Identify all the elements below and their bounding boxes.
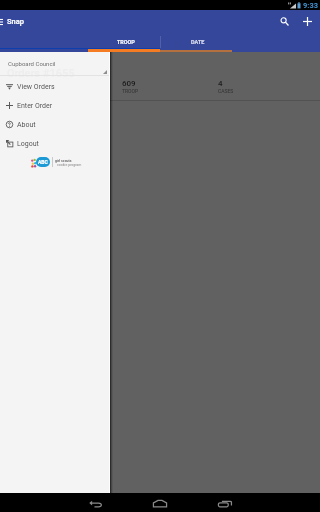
button[interactable]: Home — [138, 493, 182, 512]
staticText: DATE — [191, 39, 205, 45]
button[interactable]: Back — [73, 493, 117, 512]
staticText: TROOP — [122, 88, 139, 94]
button[interactable]: Open navigation drawer — [0, 10, 8, 33]
button[interactable]: Add — [296, 10, 319, 33]
button[interactable]: About — [0, 115, 110, 134]
staticText: 609 — [122, 79, 136, 88]
staticText: About — [17, 121, 36, 129]
staticText: ABC — [38, 159, 48, 165]
staticText: girl scouts — [55, 159, 72, 163]
staticText: Orders #1655 — [7, 67, 75, 80]
staticText: TROOP — [117, 39, 135, 45]
button[interactable]: Enter Order — [0, 96, 110, 115]
button[interactable]: TROOP — [90, 33, 162, 52]
staticText: Enter Order — [17, 102, 53, 110]
staticText: 4 — [218, 79, 223, 88]
staticText: 9:33 — [303, 1, 319, 10]
button[interactable]: Logout — [0, 134, 110, 153]
button[interactable]: Recent apps — [203, 493, 247, 512]
staticText: Logout — [17, 140, 39, 148]
button[interactable]: DATE — [162, 33, 234, 52]
button[interactable]: View Orders — [0, 77, 110, 96]
button[interactable]: Orders #1655 — [0, 52, 110, 75]
staticText: Cupboard Council — [8, 60, 56, 67]
staticText: Snap — [7, 17, 24, 26]
staticText: CASES — [218, 88, 234, 94]
staticText: View Orders — [17, 83, 55, 91]
staticText: cookie program — [57, 163, 82, 167]
button[interactable]: Search — [273, 10, 296, 33]
